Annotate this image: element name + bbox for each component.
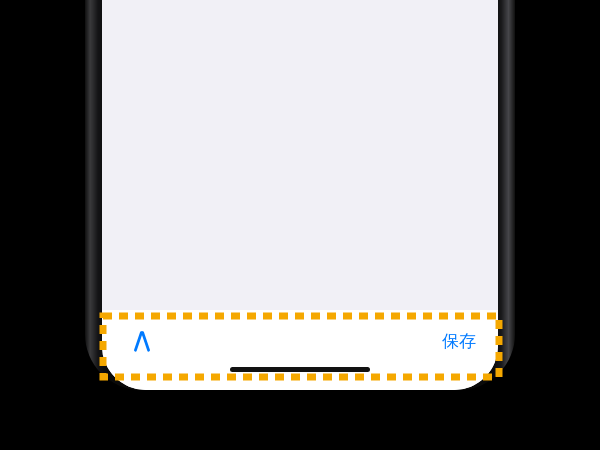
button[interactable]: Measure	[120, 319, 164, 363]
button[interactable]: 保存	[432, 325, 486, 358]
staticText: 保存	[442, 331, 476, 352]
